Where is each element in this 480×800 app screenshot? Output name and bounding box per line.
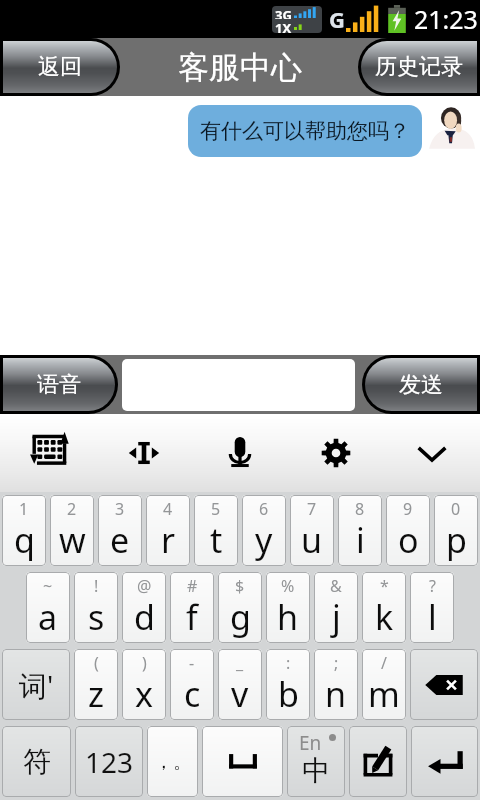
staticText: a xyxy=(38,594,58,640)
button[interactable]: 历史记录 xyxy=(361,41,477,93)
staticText: 词' xyxy=(19,666,54,704)
staticText: - xyxy=(189,652,195,674)
button[interactable]: Handwriting xyxy=(349,726,407,797)
button[interactable]: Voice input xyxy=(192,414,288,492)
staticText: z xyxy=(88,671,104,717)
button[interactable]: / xyxy=(362,649,406,720)
staticText: k xyxy=(375,594,394,640)
staticText: 返回 xyxy=(38,53,82,81)
button[interactable]: ，。 xyxy=(147,726,198,797)
staticText: 1 xyxy=(19,498,29,520)
button[interactable]: 发送 xyxy=(365,358,477,411)
staticText: 8 xyxy=(355,498,365,520)
button[interactable]: 8 xyxy=(338,495,382,566)
staticText: G xyxy=(329,4,345,34)
button[interactable]: 2 xyxy=(50,495,94,566)
staticText: c xyxy=(184,671,201,717)
staticText: 21:23 xyxy=(414,2,478,36)
button[interactable]: ~ xyxy=(26,572,70,643)
button[interactable]: ; xyxy=(314,649,358,720)
button[interactable]: - xyxy=(170,649,214,720)
button[interactable]: ) xyxy=(122,649,166,720)
button[interactable]: & xyxy=(314,572,358,643)
staticText: 客服中心 xyxy=(178,48,302,87)
staticText: : xyxy=(286,652,291,674)
button[interactable]: Space xyxy=(202,726,283,797)
staticText: 4 xyxy=(163,498,173,520)
button[interactable]: 123 xyxy=(75,726,143,797)
button[interactable]: Keyboard layout xyxy=(0,414,96,492)
button[interactable]: $ xyxy=(218,572,262,643)
staticText: 中 xyxy=(302,753,330,788)
button[interactable]: % xyxy=(266,572,310,643)
staticText: e xyxy=(110,517,130,563)
button[interactable]: 语音 xyxy=(3,358,115,411)
staticText: 有什么可以帮助您吗？ xyxy=(200,118,410,144)
staticText: ( xyxy=(94,652,99,674)
button[interactable]: ! xyxy=(74,572,118,643)
staticText: j xyxy=(332,594,341,640)
button[interactable]: 1 xyxy=(2,495,46,566)
button[interactable]: ( xyxy=(74,649,118,720)
button[interactable]: # xyxy=(170,572,214,643)
staticText: 6 xyxy=(259,498,269,520)
staticText: m xyxy=(368,671,400,717)
staticText: n xyxy=(325,671,347,717)
staticText: p xyxy=(446,517,467,563)
staticText: ; xyxy=(334,652,339,674)
staticText: y xyxy=(255,517,273,563)
button[interactable]: 符 xyxy=(2,726,71,797)
button[interactable]: 0 xyxy=(434,495,478,566)
button[interactable]: 3 xyxy=(98,495,142,566)
button[interactable]: 9 xyxy=(386,495,430,566)
button[interactable]: @ xyxy=(122,572,166,643)
button[interactable]: Enter xyxy=(411,726,478,797)
button[interactable]: * xyxy=(362,572,406,643)
button[interactable]: Hide keyboard xyxy=(384,414,480,492)
staticText: _ xyxy=(236,652,244,674)
button[interactable]: 有什么可以帮助您吗？ xyxy=(188,105,422,157)
button[interactable]: 5 xyxy=(194,495,238,566)
staticText: ，。 xyxy=(154,750,192,774)
button[interactable]: 返回 xyxy=(3,41,117,93)
staticText: & xyxy=(330,575,342,597)
button[interactable]: 6 xyxy=(242,495,286,566)
staticText: x xyxy=(135,671,153,717)
button[interactable]: 7 xyxy=(290,495,334,566)
staticText: 语音 xyxy=(37,371,81,399)
button[interactable]: _ xyxy=(218,649,262,720)
staticText: s xyxy=(88,594,105,640)
button[interactable]: En xyxy=(287,726,345,797)
staticText: $ xyxy=(235,575,245,597)
staticText: 7 xyxy=(307,498,317,520)
staticText: 9 xyxy=(403,498,413,520)
staticText: r xyxy=(161,517,176,563)
staticText: ? xyxy=(429,575,436,597)
button[interactable]: Settings xyxy=(288,414,384,492)
staticText: 1X xyxy=(275,19,292,33)
staticText: h xyxy=(277,594,299,640)
button[interactable]: : xyxy=(266,649,310,720)
staticText: l xyxy=(428,594,437,640)
button[interactable] xyxy=(122,359,355,411)
staticText: / xyxy=(381,652,387,674)
button[interactable]: Move cursor xyxy=(96,414,192,492)
button[interactable]: 词' xyxy=(2,649,70,720)
staticText: f xyxy=(186,594,198,640)
staticText: w xyxy=(59,517,86,563)
staticText: % xyxy=(281,575,295,597)
staticText: 0 xyxy=(451,498,461,520)
staticText: ) xyxy=(142,652,147,674)
button[interactable]: ? xyxy=(410,572,454,643)
staticText: En xyxy=(299,730,322,756)
button[interactable]: 4 xyxy=(146,495,190,566)
staticText: 123 xyxy=(85,743,134,781)
staticText: # xyxy=(187,575,198,597)
button[interactable]: Backspace xyxy=(410,649,478,720)
staticText: g xyxy=(230,594,251,640)
staticText: o xyxy=(398,517,419,563)
staticText: v xyxy=(231,671,249,717)
staticText: ! xyxy=(94,575,99,597)
staticText: d xyxy=(134,594,155,640)
staticText: ~ xyxy=(43,575,53,597)
